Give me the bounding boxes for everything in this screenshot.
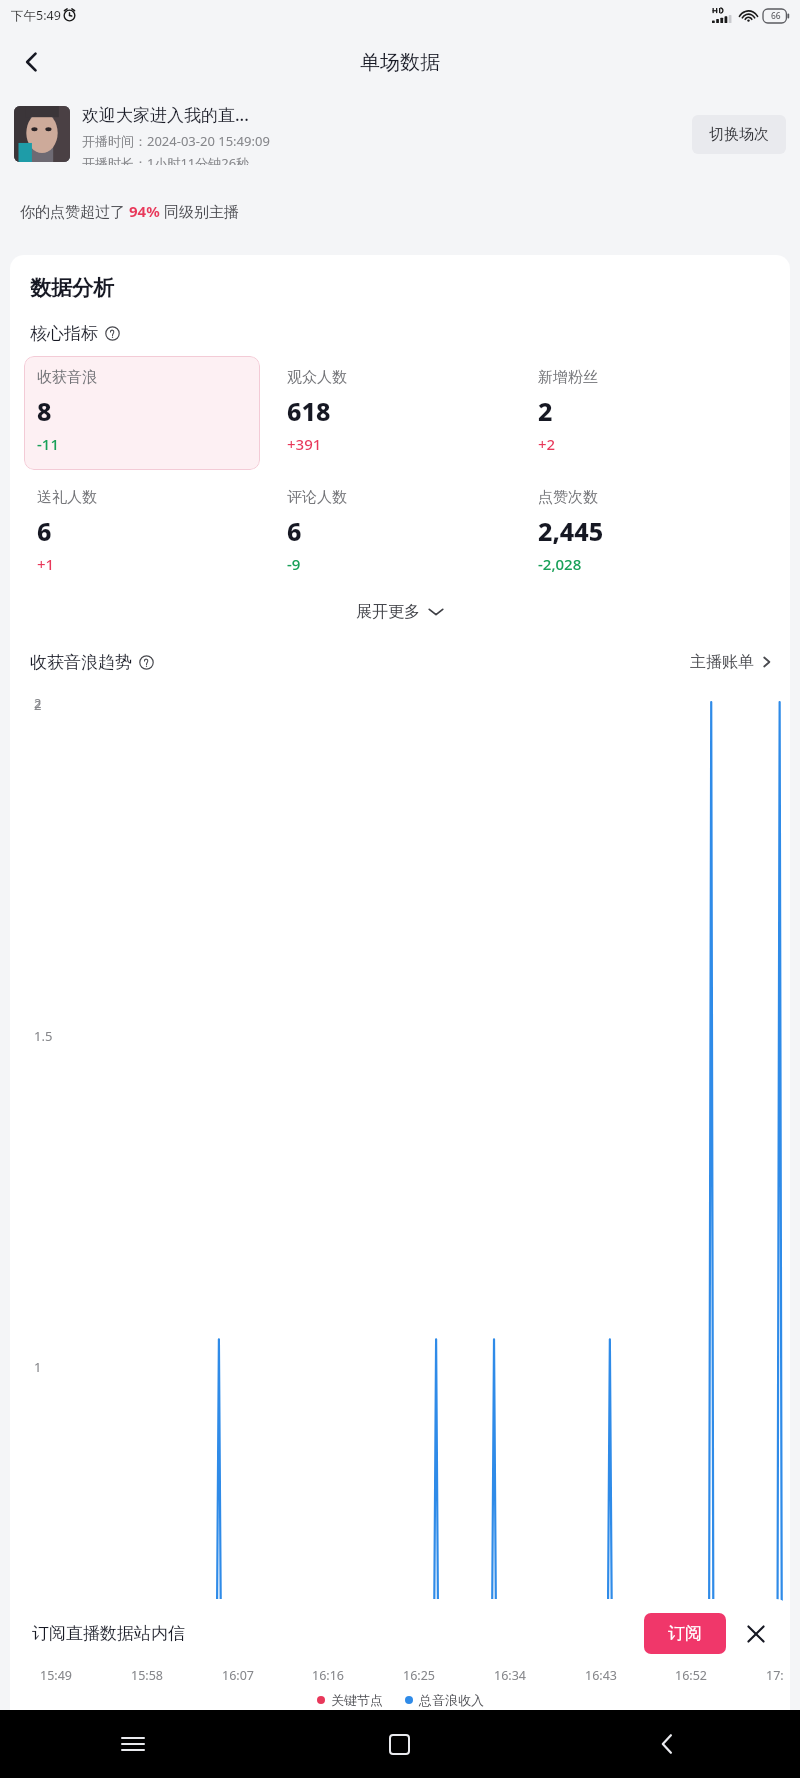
- button[interactable]: Avatar: [14, 106, 70, 162]
- staticText: 送礼人数: [37, 488, 97, 507]
- staticText: 66: [771, 10, 781, 22]
- staticText: 2: [34, 696, 42, 714]
- button[interactable]: 核心指标说明: [105, 326, 120, 341]
- staticText: 同级别主播: [160, 201, 239, 221]
- staticText: +2: [538, 434, 556, 454]
- staticText: 主播账单: [690, 652, 754, 672]
- staticText: 618: [287, 394, 331, 428]
- staticText: 16:52: [675, 1667, 707, 1684]
- staticText: 你的点赞超过了: [20, 201, 129, 221]
- button[interactable]: 观众人数: [274, 356, 525, 470]
- staticText: 核心指标: [30, 323, 98, 344]
- staticText: 15:49: [40, 1667, 72, 1684]
- staticText: 16:16: [312, 1667, 344, 1684]
- staticText: 开播时长：1小时11分钟26秒: [82, 154, 250, 165]
- staticText: 开播时间：2024-03-20 15:49:09: [82, 132, 270, 150]
- button[interactable]: Recents: [0, 1710, 266, 1778]
- button[interactable]: Close: [738, 1616, 774, 1652]
- staticText: 展开更多: [356, 602, 420, 622]
- button[interactable]: 送礼人数: [24, 476, 274, 590]
- button[interactable]: 收获音浪趋势说明: [139, 655, 154, 670]
- staticText: 点赞次数: [538, 488, 598, 507]
- staticText: -9: [287, 554, 301, 574]
- staticText: +1: [37, 554, 55, 574]
- button[interactable]: 收获音浪: [24, 356, 274, 470]
- staticText: 收获音浪趋势: [30, 652, 132, 673]
- staticText: 2: [538, 394, 553, 428]
- button[interactable]: 新增粉丝: [525, 356, 776, 470]
- staticText: 16:34: [494, 1667, 526, 1684]
- staticText: 下午5:49: [11, 7, 61, 24]
- button[interactable]: Back: [533, 1710, 800, 1778]
- staticText: +391: [287, 434, 322, 454]
- staticText: 关键节点: [331, 1692, 383, 1708]
- button[interactable]: 展开更多: [10, 594, 790, 630]
- staticText: 6: [287, 514, 302, 548]
- staticText: 1: [34, 1358, 42, 1376]
- button[interactable]: Home: [266, 1710, 533, 1778]
- staticText: 6: [37, 514, 52, 548]
- staticText: -11: [37, 434, 59, 454]
- button[interactable]: 评论人数: [274, 476, 525, 590]
- staticText: 16:07: [222, 1667, 254, 1684]
- staticText: 8: [37, 394, 52, 428]
- staticText: 16:25: [403, 1667, 435, 1684]
- staticText: 收获音浪: [37, 368, 97, 387]
- staticText: -2,028: [538, 554, 582, 574]
- staticText: 数据分析: [30, 275, 114, 301]
- staticText: 1.5: [34, 1027, 53, 1045]
- staticText: 切换场次: [709, 125, 769, 144]
- staticText: 欢迎大家进入我的直...: [82, 103, 249, 126]
- button[interactable]: Back: [8, 38, 56, 86]
- staticText: 新增粉丝: [538, 368, 598, 387]
- staticText: 15:58: [131, 1667, 163, 1684]
- staticText: 94%: [129, 201, 160, 221]
- staticText: 总音浪收入: [419, 1692, 484, 1708]
- button[interactable]: 订阅: [644, 1613, 726, 1654]
- button[interactable]: 切换场次: [692, 115, 786, 154]
- staticText: 评论人数: [287, 488, 347, 507]
- staticText: 17:: [766, 1667, 784, 1684]
- button[interactable]: 主播账单: [690, 648, 772, 676]
- staticText: 订阅直播数据站内信: [32, 1623, 185, 1644]
- staticText: 订阅: [668, 1623, 702, 1644]
- button[interactable]: 点赞次数: [525, 476, 776, 590]
- staticText: 2,445: [538, 514, 604, 548]
- staticText: 2: [34, 694, 42, 712]
- staticText: 单场数据: [360, 50, 440, 75]
- staticText: 观众人数: [287, 368, 347, 387]
- staticText: 16:43: [585, 1667, 617, 1684]
